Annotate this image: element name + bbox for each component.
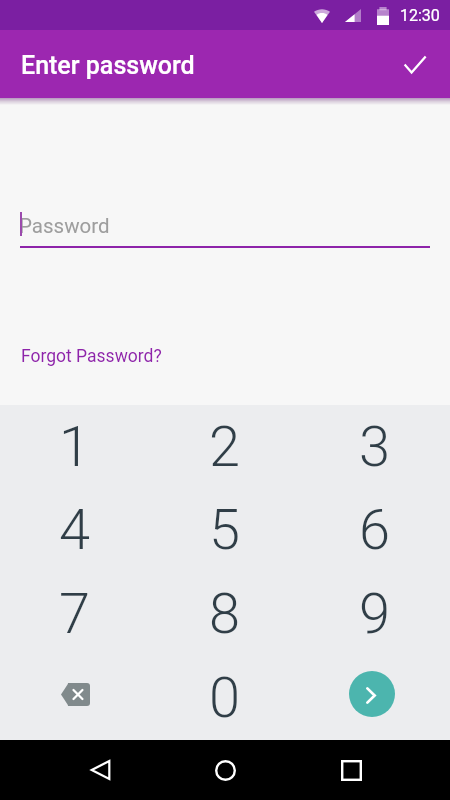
staticText: Forgot Password?	[21, 346, 162, 367]
button[interactable]: 3	[300, 405, 450, 488]
staticText: Password	[19, 214, 110, 238]
button[interactable]: 0	[150, 656, 300, 740]
button[interactable]: Recents	[324, 740, 378, 800]
button[interactable]: 7	[0, 572, 150, 656]
staticText: 7	[59, 581, 91, 647]
button[interactable]: Backspace	[0, 656, 150, 740]
staticText: 6	[359, 497, 391, 563]
staticText: 2	[209, 414, 241, 480]
staticText: 1	[59, 414, 91, 480]
button[interactable]: Home	[198, 740, 252, 800]
button[interactable]: Submit	[300, 656, 450, 740]
staticText: 12:30	[400, 6, 440, 25]
button[interactable]: Forgot Password?	[21, 338, 162, 375]
button[interactable]: Back	[73, 740, 127, 800]
button[interactable]: 6	[300, 488, 450, 572]
button[interactable]: 4	[0, 488, 150, 572]
staticText: Enter password	[21, 51, 195, 80]
staticText: 0	[209, 665, 241, 731]
button[interactable]: Confirm	[395, 41, 441, 87]
staticText: 5	[209, 497, 241, 563]
staticText: 9	[359, 581, 391, 647]
button[interactable]: 9	[300, 572, 450, 656]
staticText: 4	[59, 497, 91, 563]
button[interactable]: 2	[150, 405, 300, 488]
staticText: 8	[209, 581, 241, 647]
button[interactable]: 8	[150, 572, 300, 656]
staticText: 3	[359, 414, 391, 480]
button[interactable]: 5	[150, 488, 300, 572]
button[interactable]: 1	[0, 405, 150, 488]
